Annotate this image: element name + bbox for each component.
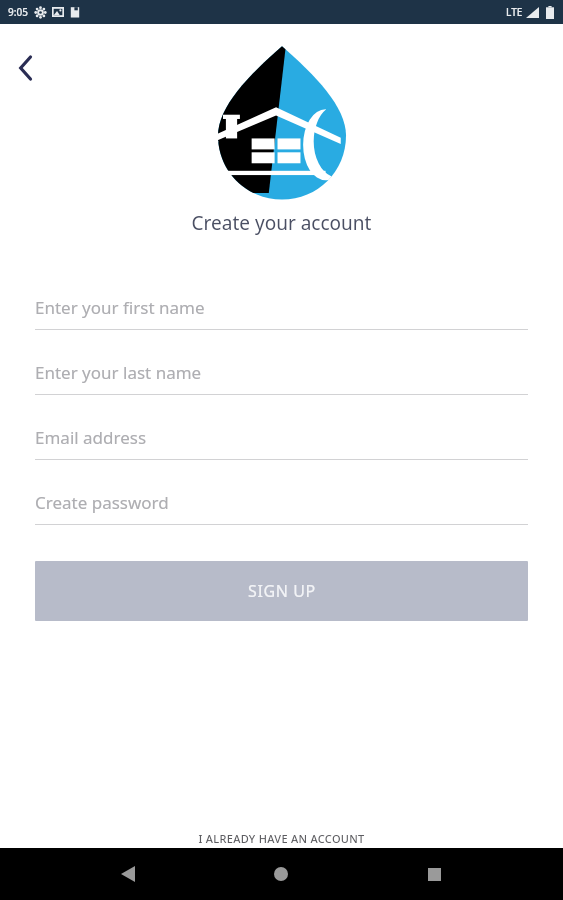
staticText: 9:05 bbox=[8, 5, 28, 19]
button[interactable]: Enter your first name bbox=[35, 285, 528, 330]
staticText: SIGN UP bbox=[248, 580, 316, 602]
button[interactable]: Email address bbox=[35, 415, 528, 460]
button[interactable]: SIGN UP bbox=[35, 561, 528, 621]
button[interactable]: Home bbox=[257, 850, 305, 898]
button[interactable]: I ALREADY HAVE AN ACCOUNT bbox=[0, 831, 563, 846]
button[interactable]: Back bbox=[104, 850, 152, 898]
staticText: Create password bbox=[35, 491, 169, 514]
staticText: Create your account bbox=[0, 210, 563, 236]
staticText: Email address bbox=[35, 426, 147, 449]
button[interactable]: Enter your last name bbox=[35, 350, 528, 395]
staticText: I ALREADY HAVE AN ACCOUNT bbox=[198, 831, 365, 846]
staticText: Enter your first name bbox=[35, 296, 205, 319]
button[interactable]: Recent apps bbox=[410, 850, 458, 898]
staticText: Enter your last name bbox=[35, 361, 202, 384]
button[interactable]: Back bbox=[6, 48, 46, 88]
staticText: LTE bbox=[506, 5, 523, 19]
button[interactable]: Create password bbox=[35, 480, 528, 525]
